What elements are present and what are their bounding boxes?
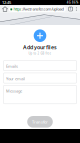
staticText: Emails [6, 63, 18, 69]
staticText: 12:45 [2, 0, 11, 5]
button[interactable]: Transfer [27, 116, 53, 128]
staticText: Up to 2 GB free [28, 52, 51, 55]
button[interactable]: Tabs [68, 5, 74, 13]
staticText: 1 [70, 7, 72, 11]
staticText: 4G [67, 1, 71, 4]
button[interactable]: Add your files [34, 29, 46, 42]
button[interactable]: Your email [3, 73, 76, 83]
button[interactable]: Menu [74, 5, 79, 13]
staticText: Message [6, 88, 22, 94]
staticText: ://wetransfer.com/upload [21, 6, 63, 12]
button[interactable]: Home [1, 5, 9, 13]
button[interactable]: Emails [3, 60, 76, 71]
staticText: Add your files [23, 44, 57, 51]
staticText: Transfer [32, 119, 48, 124]
button[interactable]: https [9, 6, 66, 12]
button[interactable]: Message [3, 85, 76, 104]
staticText: https [13, 6, 21, 12]
staticText: Your email [6, 76, 25, 81]
staticText: 86% [72, 1, 78, 4]
